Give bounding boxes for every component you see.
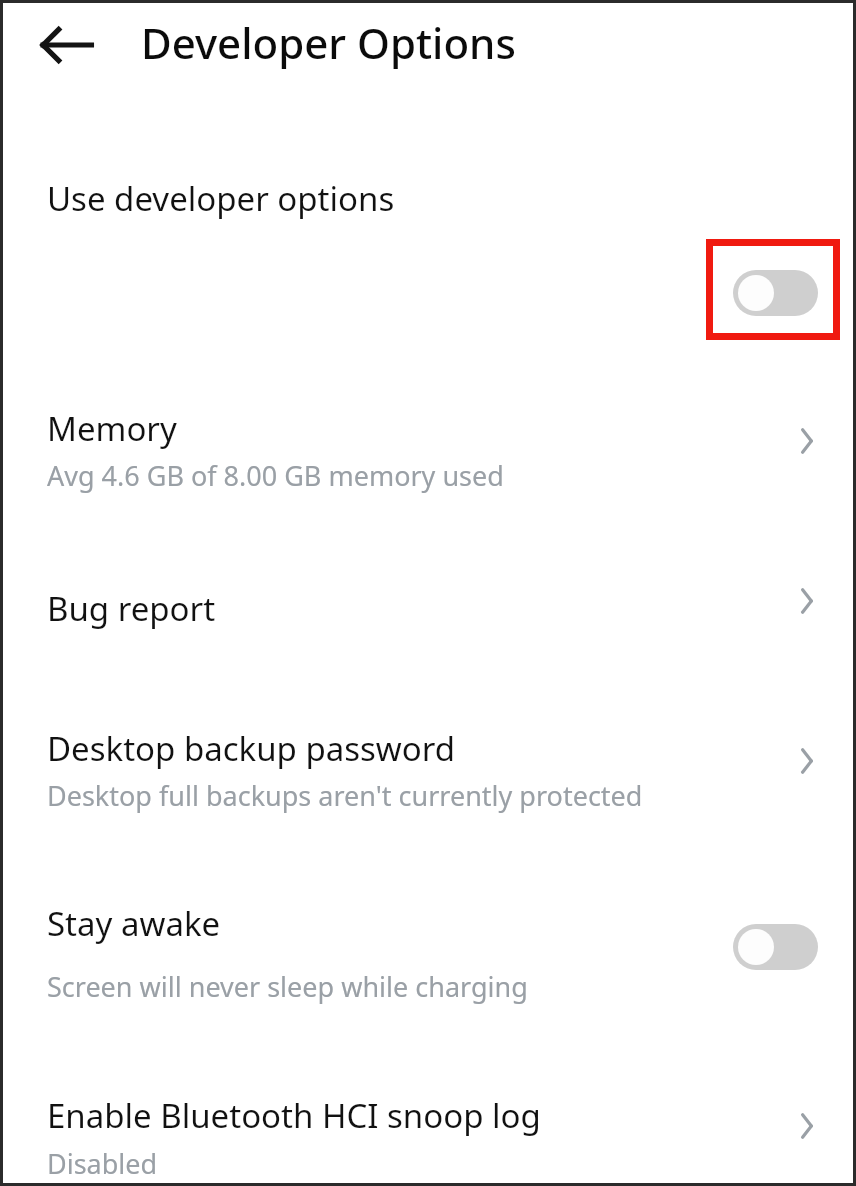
button[interactable]: Desktop backup password xyxy=(0,717,856,895)
button[interactable]: Stay awake toggle xyxy=(733,923,818,971)
button[interactable]: Use developer options toggle xyxy=(733,269,818,317)
staticText: Avg 4.6 GB of 8.00 GB memory used xyxy=(47,457,504,494)
button[interactable]: Memory xyxy=(0,397,856,577)
button[interactable]: Back xyxy=(30,8,104,82)
staticText: Desktop full backups aren't currently pr… xyxy=(47,777,643,814)
button[interactable]: Bug report xyxy=(0,577,856,717)
staticText: Memory xyxy=(47,406,177,451)
staticText: Enable Bluetooth HCI snoop log xyxy=(47,1093,541,1138)
staticText: Screen will never sleep while charging xyxy=(47,968,528,1005)
staticText: Disabled xyxy=(47,1145,158,1182)
staticText: Desktop backup password xyxy=(47,726,456,771)
staticText: Use developer options xyxy=(47,176,395,221)
staticText: Bug report xyxy=(47,586,216,631)
staticText: Developer Options xyxy=(141,14,516,71)
button[interactable]: Stay awake xyxy=(0,895,856,1085)
button[interactable]: Enable Bluetooth HCI snoop log xyxy=(0,1085,856,1186)
button[interactable]: Use developer options xyxy=(0,92,856,397)
staticText: Stay awake xyxy=(47,901,221,946)
